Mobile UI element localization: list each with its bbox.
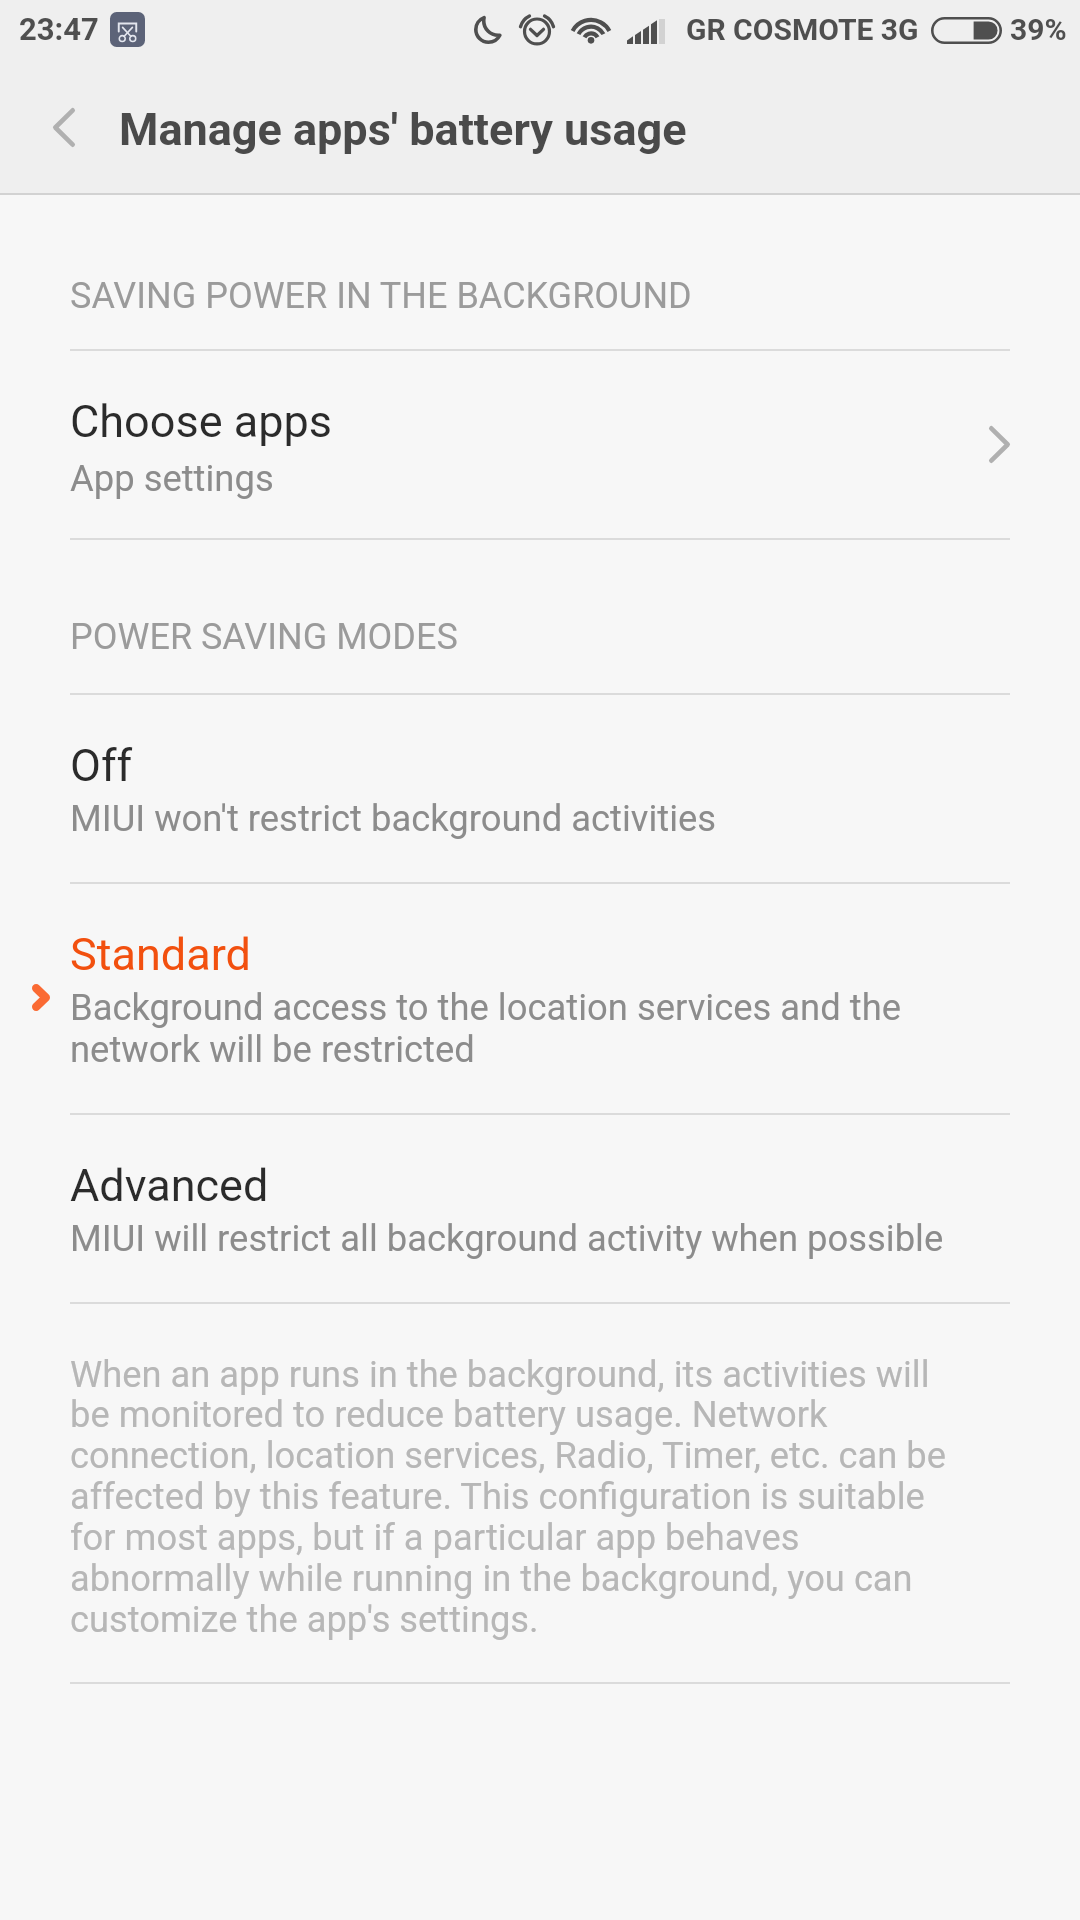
button[interactable]: Off	[0, 695, 1080, 882]
button[interactable]: Choose apps	[0, 351, 1080, 538]
staticText: 39%	[1010, 12, 1067, 47]
staticText: When an app runs in the background, its …	[70, 1353, 946, 1641]
staticText: POWER SAVING MODES	[70, 616, 458, 658]
staticText: Background access to the location servic…	[70, 986, 901, 1071]
staticText: App settings	[70, 457, 274, 500]
staticText: 23:47	[19, 11, 99, 47]
button[interactable]: Standard	[0, 884, 1080, 1113]
staticText: GR COSMOTE 3G	[686, 12, 919, 47]
staticText: Advanced	[70, 1159, 269, 1212]
staticText: Standard	[70, 928, 251, 981]
staticText: Manage apps' battery usage	[119, 103, 687, 156]
button[interactable]: Advanced	[0, 1115, 1080, 1302]
staticText: MIUI won't restrict background activitie…	[70, 797, 717, 840]
staticText: SAVING POWER IN THE BACKGROUND	[70, 275, 692, 317]
staticText: Choose apps	[70, 395, 332, 448]
button[interactable]: Back	[18, 81, 110, 173]
staticText: Off	[70, 739, 133, 792]
staticText: MIUI will restrict all background activi…	[70, 1217, 944, 1260]
